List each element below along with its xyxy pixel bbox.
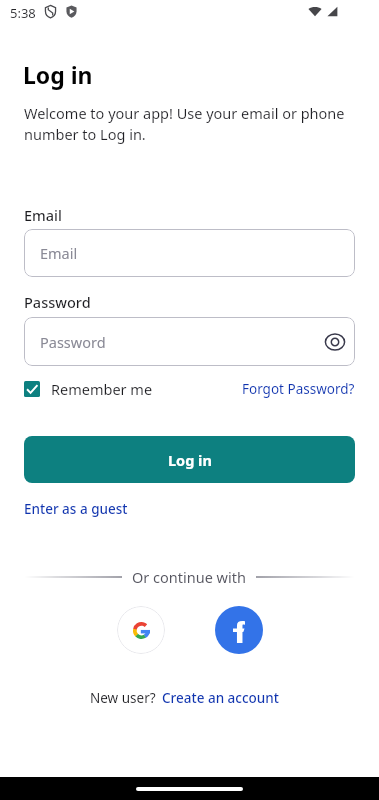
staticText: Email xyxy=(40,243,78,263)
staticText: Log in xyxy=(23,59,93,90)
button[interactable]: Continue with Facebook xyxy=(215,606,263,654)
button[interactable]: Password xyxy=(24,317,355,366)
staticText: Log in xyxy=(168,450,212,470)
staticText: Or continue with xyxy=(132,567,246,587)
staticText: Remember me xyxy=(51,379,153,399)
button[interactable]: Create an account xyxy=(162,689,279,707)
staticText: New user? xyxy=(90,689,156,707)
staticText: Password xyxy=(40,332,106,352)
staticText: 5:38 xyxy=(10,4,36,22)
button[interactable]: Enter as a guest xyxy=(24,500,128,518)
button[interactable]: Continue with Google xyxy=(117,606,165,654)
button[interactable]: Show password xyxy=(320,327,350,357)
button[interactable]: Forgot Password? xyxy=(242,380,355,398)
staticText: Welcome to your app! Use your email or p… xyxy=(24,103,349,145)
button[interactable]: Email xyxy=(24,229,355,277)
staticText: Password xyxy=(24,292,91,312)
button[interactable]: Log in xyxy=(24,436,355,483)
staticText: Email xyxy=(24,205,62,225)
button[interactable]: Remember me xyxy=(24,379,153,399)
